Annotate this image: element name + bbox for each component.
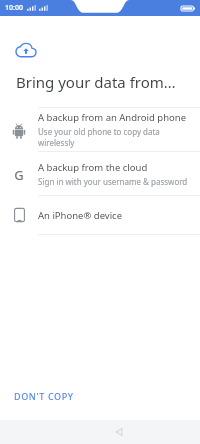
staticText: 10:00 (5, 3, 23, 13)
staticText: An iPhone® device (38, 209, 123, 222)
staticText: Use your old phone to copy data wireless… (38, 126, 190, 148)
staticText: Bring your data from… (16, 72, 176, 92)
staticText: A backup from the cloud (38, 161, 148, 174)
staticText: Sign in with your username & password (38, 176, 188, 187)
staticText: G (14, 166, 24, 182)
other: Backup (16, 40, 36, 60)
button[interactable]: Back (109, 422, 129, 442)
staticText: A backup from an Android phone (38, 111, 187, 124)
button[interactable]: DON'T COPY (8, 384, 80, 408)
button[interactable]: An iPhone® device (0, 196, 200, 234)
button[interactable]: G (0, 152, 200, 195)
button[interactable]: A backup from an Android phone (0, 108, 200, 151)
staticText: DON'T COPY (14, 390, 74, 402)
